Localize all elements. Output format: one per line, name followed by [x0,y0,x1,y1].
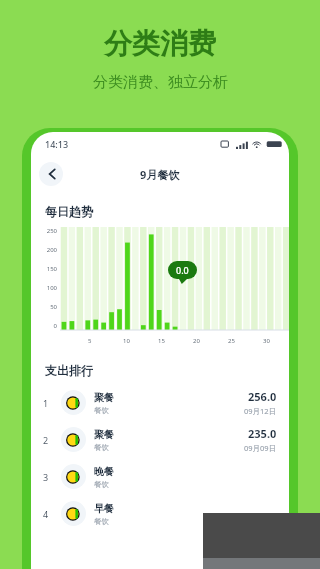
staticText: 餐饮 [94,517,109,526]
button[interactable]: 4 [31,495,289,532]
staticText: 3 [43,471,57,483]
staticText: 聚餐 [94,391,114,404]
staticText: 9月餐饮 [140,167,180,182]
staticText: 聚餐 [94,428,114,441]
staticText: 分类消费、独立分析 [93,73,228,92]
staticText: 15 [158,337,165,345]
staticText: 10 [123,337,130,345]
staticText: 20 [193,337,200,345]
staticText: 早餐 [94,502,114,515]
staticText: 餐饮 [94,443,109,452]
staticText: 2 [43,434,57,446]
staticText: 晚餐 [94,465,114,478]
button[interactable]: 1 [31,384,289,421]
staticText: 0.0 [176,264,189,276]
staticText: 1 [43,397,57,409]
button[interactable]: 3 [31,458,289,495]
staticText: 09月09日 [244,443,277,453]
staticText: 200 [46,246,57,254]
staticText: 餐饮 [94,406,109,415]
staticText: 150 [46,265,57,273]
staticText: 4 [43,508,57,520]
staticText: 餐饮 [94,480,109,489]
staticText: 256.0 [248,389,277,404]
staticText: 支出排行 [45,363,93,378]
staticText: 250 [46,227,57,235]
staticText: 50 [50,303,57,311]
staticText: 5 [88,337,92,345]
staticText: 25 [228,337,235,345]
staticText: 14:13 [45,138,69,150]
staticText: 0 [53,322,57,330]
staticText: 235.0 [248,426,277,441]
staticText: 09月12日 [244,406,277,416]
button[interactable]: 2 [31,421,289,458]
button[interactable]: Back [39,162,63,186]
staticText: 分类消费 [104,26,216,61]
staticText: 100 [46,284,57,292]
staticText: 每日趋势 [45,204,93,219]
staticText: 30 [263,337,270,345]
